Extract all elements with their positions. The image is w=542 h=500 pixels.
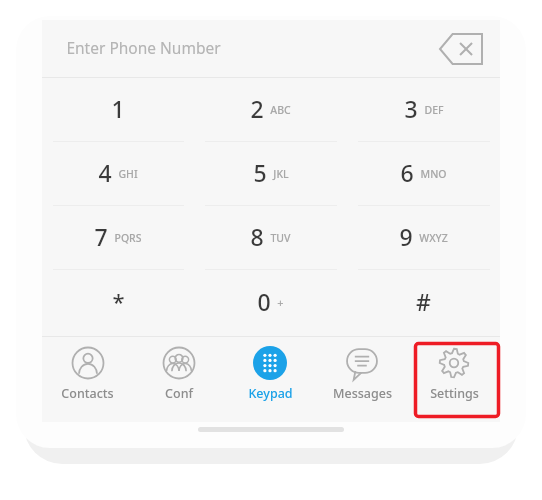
staticText: 2: [250, 93, 264, 124]
staticText: 4: [98, 157, 112, 188]
button[interactable]: 0: [194, 270, 347, 336]
staticText: 7: [94, 221, 108, 252]
button[interactable]: Enter Phone Number: [42, 20, 500, 77]
button[interactable]: 3: [347, 78, 500, 142]
staticText: Messages: [333, 385, 392, 402]
staticText: JKL: [273, 167, 289, 181]
staticText: Contacts: [61, 385, 114, 402]
button[interactable]: 9: [347, 206, 500, 270]
button[interactable]: Settings: [408, 337, 500, 421]
button[interactable]: Backspace: [434, 29, 488, 69]
button[interactable]: *: [42, 270, 194, 336]
staticText: 8: [250, 221, 264, 252]
button[interactable]: 6: [347, 142, 500, 206]
staticText: PQRS: [114, 231, 142, 245]
button[interactable]: Keypad: [224, 337, 316, 421]
staticText: Enter Phone Number: [66, 37, 221, 58]
button[interactable]: 8: [194, 206, 347, 270]
staticText: 0: [257, 286, 271, 317]
staticText: #: [416, 286, 431, 317]
staticText: MNO: [420, 167, 447, 181]
button[interactable]: Messages: [316, 337, 408, 421]
staticText: ABC: [270, 103, 291, 117]
staticText: GHI: [118, 167, 138, 181]
button[interactable]: 5: [194, 142, 347, 206]
staticText: Conf: [165, 385, 193, 402]
staticText: DEF: [424, 103, 444, 117]
button[interactable]: Conf: [133, 337, 224, 421]
button[interactable]: #: [347, 270, 500, 336]
staticText: 1: [111, 93, 125, 124]
staticText: WXYZ: [419, 231, 448, 245]
button[interactable]: Contacts: [42, 337, 133, 421]
staticText: TUV: [270, 231, 291, 245]
button[interactable]: 2: [194, 78, 347, 142]
staticText: 9: [399, 221, 413, 252]
button[interactable]: 1: [42, 78, 194, 142]
staticText: Settings: [430, 385, 479, 402]
staticText: 3: [404, 93, 418, 124]
staticText: +: [277, 295, 284, 310]
button[interactable]: 7: [42, 206, 194, 270]
button[interactable]: 4: [42, 142, 194, 206]
staticText: 6: [400, 157, 414, 188]
staticText: 5: [253, 157, 267, 188]
staticText: Keypad: [248, 385, 293, 402]
staticText: *: [112, 286, 125, 316]
